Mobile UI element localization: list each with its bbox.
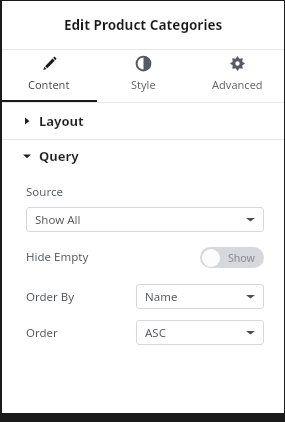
button[interactable]: Query [2,140,284,172]
staticText: Content [28,77,70,92]
staticText: Query [39,147,79,165]
button[interactable]: Name [136,284,264,309]
staticText: Show All [35,212,81,228]
staticText: Source [26,184,63,200]
staticText: Layout [39,112,84,130]
staticText: ASC [145,325,166,341]
staticText: Order [26,325,58,341]
button[interactable]: Show All [26,207,264,232]
staticText: Name [145,289,178,305]
staticText: Order By [26,289,75,305]
staticText: Hide Empty [26,249,89,265]
staticText: Advanced [212,77,263,92]
staticText: Edit Product Categories [64,16,223,34]
button[interactable]: Style [96,50,190,103]
button[interactable]: Hide Empty toggle [200,247,264,268]
button[interactable]: Advanced [190,50,284,103]
button[interactable]: Layout [2,103,284,139]
staticText: Style [131,77,156,92]
button[interactable]: ASC [136,320,264,345]
staticText: Show [228,251,255,265]
button[interactable]: Content [2,50,96,103]
